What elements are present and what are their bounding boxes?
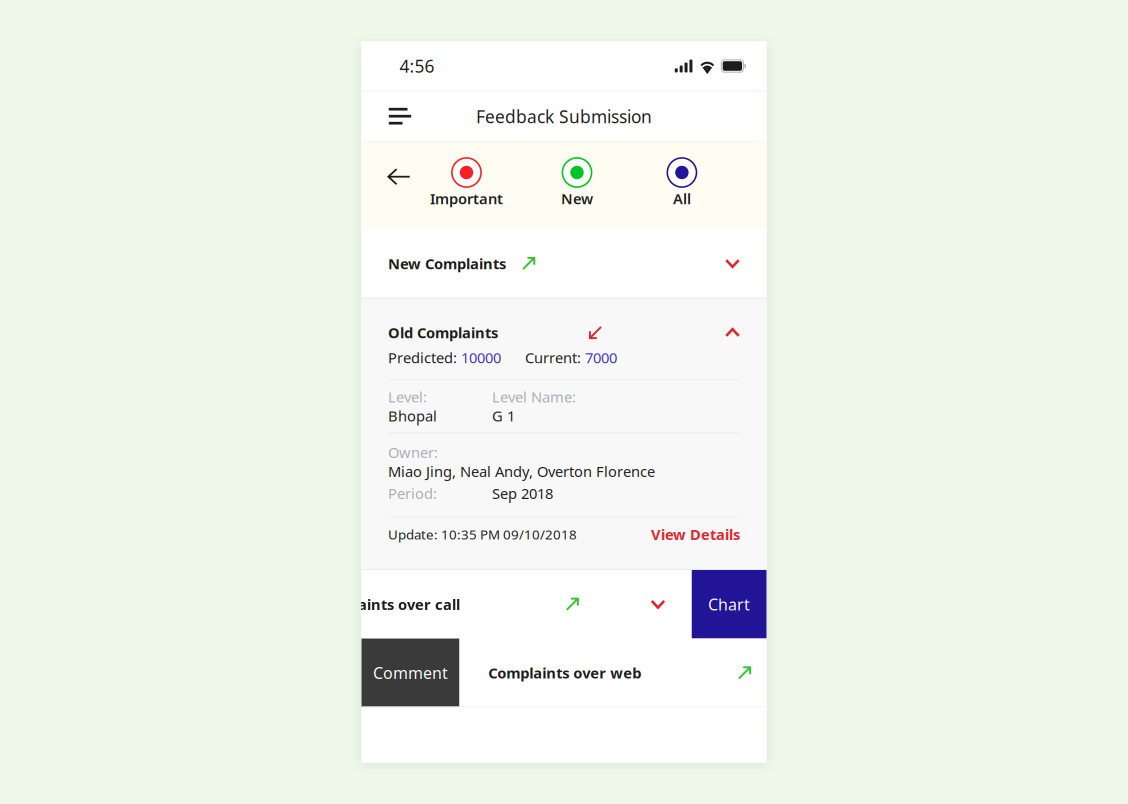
staticText: Bhopal (388, 406, 437, 425)
staticText: New Complaints (388, 254, 506, 273)
button[interactable]: Old Complaints (361, 297, 766, 379)
button[interactable]: New (527, 158, 627, 206)
staticText: Important (430, 189, 503, 208)
button[interactable]: Comment (361, 638, 459, 707)
button[interactable]: Menu (376, 90, 424, 142)
staticText: Predicted: (388, 348, 461, 367)
button[interactable]: Complaints over call (286, 570, 691, 638)
staticText: Period: (388, 484, 437, 503)
staticText: Old Complaints (388, 323, 498, 342)
staticText: Comment (373, 662, 448, 683)
button[interactable]: All (632, 158, 732, 206)
staticText: Current: (525, 348, 585, 367)
staticText: Feedback Submission (476, 105, 652, 128)
staticText: Complaints over call (313, 594, 460, 614)
staticText: View Details (651, 524, 740, 544)
staticText: Update: 10:35 PM 09/10/2018 (388, 525, 577, 543)
button[interactable]: Chart (691, 570, 766, 638)
staticText: Owner: (388, 443, 438, 462)
staticText: Level: (388, 387, 427, 406)
button[interactable]: New Complaints (361, 229, 766, 297)
button[interactable]: Important (416, 158, 516, 206)
button[interactable]: Back (377, 155, 421, 199)
staticText: Complaints over web (488, 663, 641, 683)
staticText: Chart (708, 594, 750, 615)
staticText: All (673, 189, 691, 208)
staticText: New (561, 189, 593, 208)
button[interactable]: View Details (651, 524, 740, 544)
button[interactable]: Complaints over web (459, 638, 766, 707)
staticText: 7000 (585, 348, 617, 367)
staticText: Level Name: (492, 387, 576, 406)
staticText: Sep 2018 (492, 484, 553, 503)
staticText: G 1 (492, 406, 515, 425)
staticText: 4:56 (399, 54, 434, 77)
staticText: 10000 (461, 348, 501, 367)
staticText: Miao Jing, Neal Andy, Overton Florence (388, 462, 655, 481)
